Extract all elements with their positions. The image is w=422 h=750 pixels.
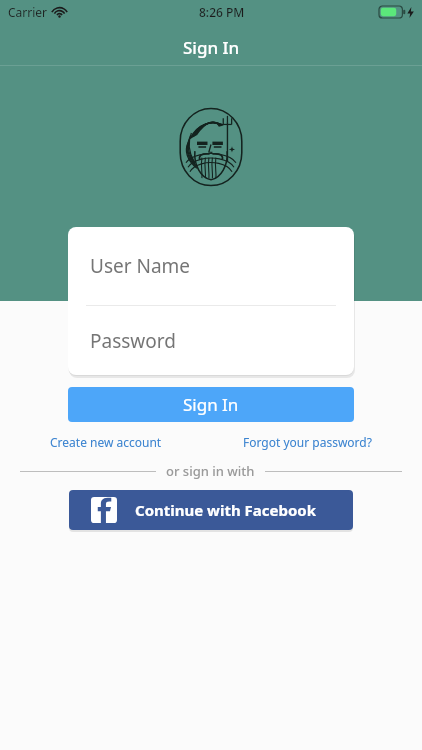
button[interactable]: Sign In bbox=[68, 387, 354, 422]
staticText: or sign in with bbox=[166, 462, 255, 480]
staticText: Continue with Facebook bbox=[135, 500, 317, 520]
other: Battery bbox=[379, 6, 405, 18]
staticText: Forgot your password? bbox=[243, 434, 372, 450]
button[interactable]: Forgot your password? bbox=[243, 434, 372, 450]
button[interactable]: Create new account bbox=[50, 434, 162, 450]
staticText: 8:26 PM bbox=[199, 4, 245, 20]
staticText: Sign In bbox=[183, 36, 240, 59]
other: Continue with Facebook bbox=[91, 497, 117, 523]
staticText: User Name bbox=[90, 253, 191, 279]
other: Wi-Fi bbox=[53, 7, 66, 17]
button[interactable]: Continue with Facebook bbox=[69, 490, 353, 530]
staticText: Create new account bbox=[50, 434, 162, 450]
button[interactable]: Password bbox=[68, 306, 354, 375]
staticText: Carrier bbox=[8, 4, 48, 20]
other: App logo bbox=[176, 106, 246, 188]
staticText: Sign In bbox=[183, 393, 239, 416]
staticText: Password bbox=[90, 328, 176, 354]
button[interactable]: User Name bbox=[68, 227, 354, 305]
